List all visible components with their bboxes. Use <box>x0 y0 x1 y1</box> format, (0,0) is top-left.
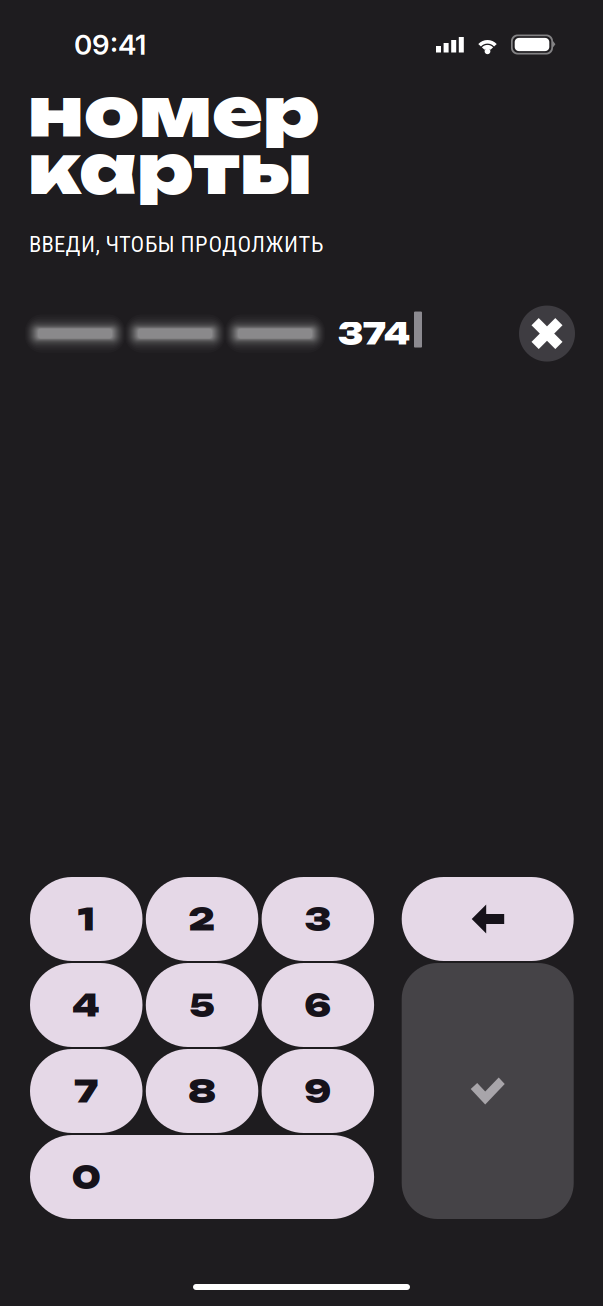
staticText: 3 <box>305 900 331 938</box>
button[interactable]: Clear <box>519 306 575 362</box>
staticText: 4 <box>72 986 100 1024</box>
button[interactable]: 9 <box>262 1049 374 1133</box>
staticText: 2 <box>189 900 216 938</box>
button[interactable]: 5 <box>146 963 258 1047</box>
button[interactable]: 6 <box>262 963 374 1047</box>
button[interactable]: 1 <box>30 877 142 961</box>
button[interactable]: 4 <box>30 963 142 1047</box>
button[interactable]: 0 <box>30 1135 374 1219</box>
staticText: 9 <box>304 1072 331 1110</box>
staticText: 09:41 <box>74 28 146 61</box>
staticText: 5 <box>190 986 215 1024</box>
button[interactable]: 7 <box>30 1049 142 1133</box>
staticText: 0 <box>72 1158 101 1196</box>
staticText: карты <box>28 126 312 211</box>
staticText: 6 <box>304 986 331 1024</box>
button[interactable]: 2 <box>146 877 258 961</box>
button[interactable]: 3 <box>262 877 374 961</box>
staticText: 7 <box>74 1072 98 1110</box>
button[interactable]: Backspace <box>402 877 574 961</box>
button[interactable]: Confirm <box>402 963 574 1219</box>
staticText: номер <box>28 69 320 154</box>
staticText: 374 <box>338 315 410 352</box>
staticText: 8 <box>188 1072 216 1110</box>
button[interactable]: 8 <box>146 1049 258 1133</box>
staticText: 1 <box>78 900 95 938</box>
staticText: ВВЕДИ, ЧТОБЫ ПРОДОЛЖИТЬ <box>29 231 323 258</box>
